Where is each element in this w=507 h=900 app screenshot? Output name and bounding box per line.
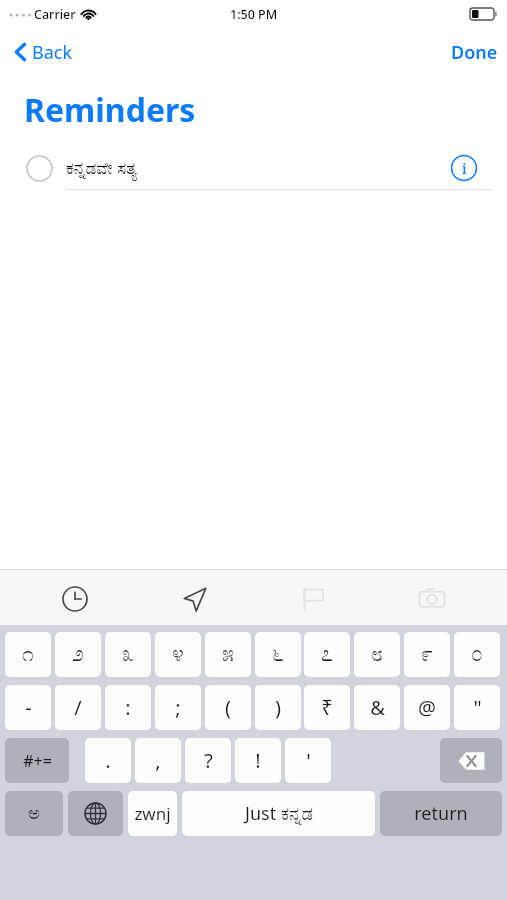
button[interactable]: ೨	[55, 632, 101, 677]
button[interactable]: '	[285, 738, 331, 783]
button[interactable]: ೦	[454, 632, 500, 677]
staticText: ೨	[72, 644, 84, 665]
staticText: zwnj	[134, 802, 171, 825]
button[interactable]: ಕನ್ನಡವೇ ಸತ್ಯ	[0, 146, 507, 192]
button[interactable]: ೭	[304, 632, 350, 677]
button[interactable]: ೬	[255, 632, 301, 677]
staticText: "	[473, 694, 482, 721]
staticText: ೩	[122, 644, 134, 665]
staticText: ೬	[272, 644, 284, 665]
button[interactable]: .	[85, 738, 131, 783]
staticText: return	[414, 801, 468, 826]
staticText: ೯	[421, 644, 433, 665]
staticText: ೫	[222, 644, 234, 665]
button[interactable]: :	[105, 685, 151, 730]
staticText: 1:50 PM	[230, 6, 278, 23]
staticText: .	[105, 747, 111, 774]
staticText: !	[255, 747, 261, 774]
button[interactable]: Details	[450, 154, 478, 182]
button[interactable]: Done	[420, 36, 498, 68]
staticText: Reminders	[24, 88, 196, 132]
staticText: ೦	[471, 644, 483, 665]
button[interactable]: Backspace	[440, 738, 502, 783]
staticText: i	[462, 159, 467, 178]
staticText: Carrier	[34, 6, 76, 23]
staticText: ?	[204, 747, 213, 774]
staticText: ೮	[371, 644, 383, 665]
button[interactable]: ೧	[5, 632, 51, 677]
button[interactable]: &	[354, 685, 400, 730]
staticText: :	[125, 694, 131, 721]
button[interactable]: (	[205, 685, 251, 730]
staticText: Back	[32, 40, 73, 65]
staticText: #+=	[23, 750, 52, 772]
staticText: Just ಕನ್ನಡ	[245, 801, 313, 826]
staticText: ;	[175, 694, 181, 721]
staticText: Done	[451, 40, 498, 65]
staticText: )	[275, 694, 281, 721]
button[interactable]: "	[454, 685, 500, 730]
staticText: ,	[155, 747, 161, 774]
button[interactable]: !	[235, 738, 281, 783]
staticText: /	[74, 694, 82, 721]
button[interactable]: ,	[135, 738, 181, 783]
button[interactable]: return	[380, 791, 502, 836]
staticText: ೪	[172, 644, 184, 665]
staticText: (	[225, 694, 231, 721]
button[interactable]: ೩	[105, 632, 151, 677]
button[interactable]: ೮	[354, 632, 400, 677]
button[interactable]: -	[5, 685, 51, 730]
button[interactable]: ₹	[304, 685, 350, 730]
button[interactable]: Just ಕನ್ನಡ	[182, 791, 375, 836]
button[interactable]: ;	[155, 685, 201, 730]
staticText: ಕನ್ನಡವೇ ಸತ್ಯ	[66, 156, 138, 179]
staticText: ೭	[321, 644, 333, 665]
button[interactable]: /	[55, 685, 101, 730]
button[interactable]: )	[255, 685, 301, 730]
button[interactable]: Flag	[294, 580, 332, 618]
button[interactable]: ?	[185, 738, 231, 783]
staticText: @	[418, 694, 436, 721]
staticText: -	[25, 694, 32, 721]
staticText: '	[306, 747, 311, 774]
button[interactable]: Next keyboard	[68, 791, 123, 836]
staticText: ಅ	[28, 805, 40, 823]
button[interactable]: Remind me at a location	[175, 580, 213, 618]
button[interactable]: Back	[12, 36, 73, 68]
button[interactable]: ಅ	[5, 791, 63, 836]
staticText: ₹	[321, 694, 333, 721]
button[interactable]: #+=	[5, 738, 69, 783]
staticText: ೧	[22, 644, 34, 665]
button[interactable]: ೫	[205, 632, 251, 677]
button[interactable]: Camera	[413, 580, 451, 618]
button[interactable]: ೪	[155, 632, 201, 677]
button[interactable]: Remind me at a time	[56, 580, 94, 618]
button[interactable]: @	[404, 685, 450, 730]
button[interactable]: ೯	[404, 632, 450, 677]
staticText: &	[370, 694, 385, 721]
button[interactable]: zwnj	[128, 791, 177, 836]
